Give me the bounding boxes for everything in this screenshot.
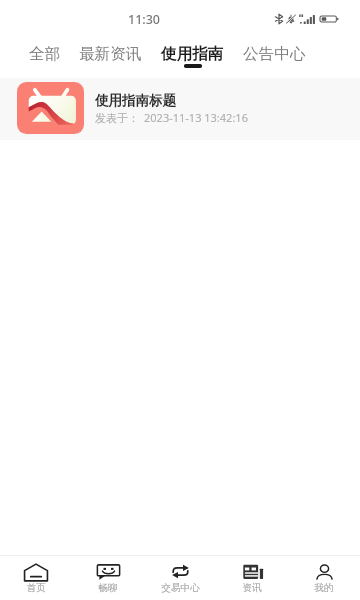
- staticText: 我的: [314, 582, 334, 594]
- button[interactable]: 全部: [20, 34, 69, 78]
- other: Profile: [315, 564, 334, 580]
- button[interactable]: 使用指南: [152, 34, 233, 78]
- staticText: 发表于：: [95, 111, 139, 125]
- other: Home: [23, 563, 49, 582]
- staticText: 畅聊: [98, 582, 118, 594]
- staticText: 资讯: [242, 582, 262, 594]
- other: Trade center: [170, 564, 191, 579]
- button[interactable]: 公告中心: [234, 34, 315, 78]
- staticText: 11:30: [128, 11, 161, 28]
- button[interactable]: Chat: [72, 556, 144, 572]
- button[interactable]: 使用指南标题: [0, 78, 360, 140]
- button[interactable]: Home: [0, 556, 72, 575]
- staticText: 最新资讯: [79, 44, 142, 64]
- staticText: 使用指南: [161, 44, 224, 64]
- staticText: 使用指南标题: [95, 92, 176, 109]
- staticText: 全部: [29, 44, 61, 64]
- staticText: 交易中心: [161, 582, 200, 594]
- other: News: [241, 564, 264, 580]
- other: Chat: [96, 564, 121, 580]
- button[interactable]: 最新资讯: [70, 34, 151, 78]
- staticText: 2023-11-13 13:42:16: [144, 110, 248, 125]
- button[interactable]: Profile: [288, 556, 360, 572]
- staticText: 首页: [26, 582, 46, 594]
- button[interactable]: Trade center: [144, 556, 216, 571]
- staticText: 公告中心: [243, 44, 306, 64]
- button[interactable]: News: [216, 556, 288, 572]
